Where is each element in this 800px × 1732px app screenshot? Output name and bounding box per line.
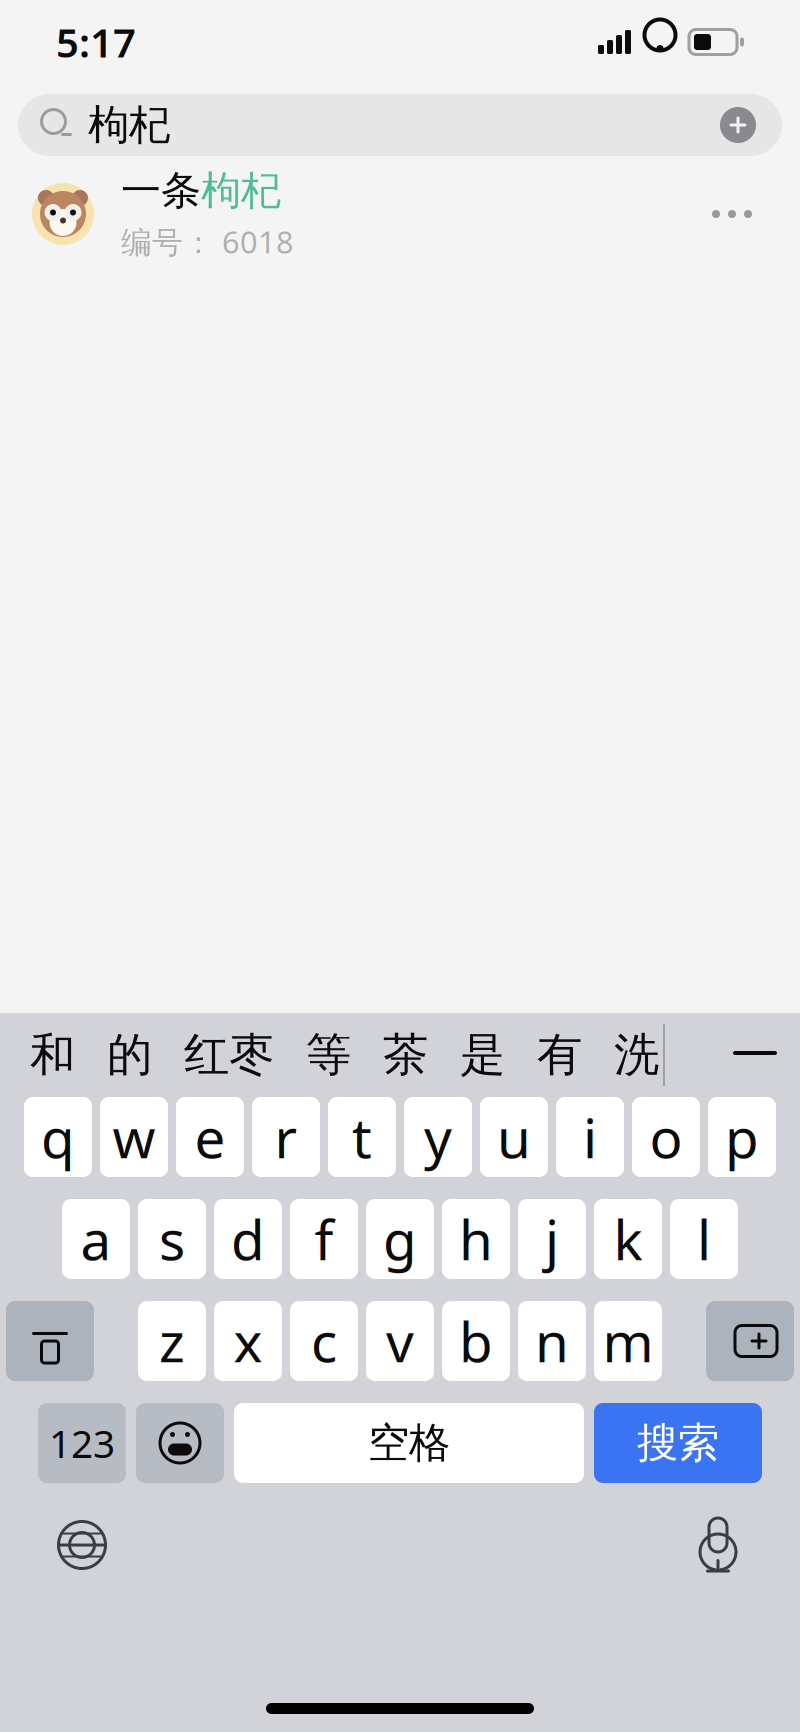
- button[interactable]: 的: [91, 1015, 168, 1095]
- button[interactable]: 空格: [234, 1403, 584, 1483]
- button[interactable]: z: [138, 1301, 206, 1381]
- staticText: 一条: [121, 166, 201, 215]
- button[interactable]: 等: [290, 1015, 367, 1095]
- button[interactable]: 一条: [0, 166, 800, 262]
- staticText: s: [159, 1203, 185, 1275]
- staticText: 编号： 6018: [121, 221, 294, 262]
- staticText: t: [352, 1101, 372, 1173]
- staticText: d: [231, 1203, 265, 1275]
- button[interactable]: 茶: [367, 1015, 444, 1095]
- button[interactable]: p: [708, 1097, 776, 1177]
- staticText: 红枣: [184, 1027, 274, 1083]
- staticText: 5:17: [56, 15, 136, 68]
- button[interactable]: e: [176, 1097, 244, 1177]
- staticText: u: [497, 1101, 531, 1173]
- staticText: 洗: [614, 1027, 659, 1083]
- button[interactable]: a: [62, 1199, 130, 1279]
- staticText: 枸杞: [201, 166, 281, 215]
- button[interactable]: 切换键盘: [34, 1505, 130, 1585]
- button[interactable]: 洗: [598, 1015, 663, 1095]
- staticText: a: [80, 1203, 111, 1275]
- staticText: r: [274, 1101, 297, 1173]
- staticText: c: [311, 1305, 337, 1377]
- button[interactable]: 是: [444, 1015, 521, 1095]
- staticText: h: [459, 1203, 493, 1275]
- staticText: 是: [460, 1027, 505, 1083]
- button[interactable]: r: [252, 1097, 320, 1177]
- staticText: 和: [30, 1027, 75, 1083]
- button[interactable]: y: [404, 1097, 472, 1177]
- staticText: k: [613, 1203, 642, 1275]
- staticText: 茶: [383, 1027, 428, 1083]
- button[interactable]: 删除: [706, 1301, 794, 1381]
- staticText: q: [41, 1101, 75, 1173]
- staticText: p: [725, 1101, 759, 1173]
- button[interactable]: j: [518, 1199, 586, 1279]
- button[interactable]: b: [442, 1301, 510, 1381]
- button[interactable]: 和: [14, 1015, 91, 1095]
- button[interactable]: k: [594, 1199, 662, 1279]
- button[interactable]: n: [518, 1301, 586, 1381]
- button[interactable]: 清除: [708, 94, 768, 156]
- staticText: n: [535, 1305, 569, 1377]
- button[interactable]: 更多: [690, 174, 774, 254]
- button[interactable]: c: [290, 1301, 358, 1381]
- button[interactable]: 语音输入: [670, 1505, 766, 1585]
- button[interactable]: s: [138, 1199, 206, 1279]
- staticText: e: [194, 1101, 225, 1173]
- button[interactable]: 表情: [136, 1403, 224, 1483]
- staticText: z: [159, 1305, 185, 1377]
- button[interactable]: m: [594, 1301, 662, 1381]
- button[interactable]: f: [290, 1199, 358, 1279]
- staticText: 空格: [368, 1418, 450, 1468]
- button[interactable]: x: [214, 1301, 282, 1381]
- button[interactable]: o: [632, 1097, 700, 1177]
- staticText: x: [233, 1305, 262, 1377]
- staticText: b: [459, 1305, 493, 1377]
- staticText: y: [424, 1101, 452, 1173]
- staticText: j: [545, 1203, 559, 1275]
- button[interactable]: u: [480, 1097, 548, 1177]
- staticText: 123: [49, 1417, 115, 1469]
- staticText: o: [649, 1101, 682, 1173]
- button[interactable]: w: [100, 1097, 168, 1177]
- staticText: 等: [306, 1027, 351, 1083]
- staticText: m: [602, 1305, 653, 1377]
- staticText: 枸杞: [88, 100, 170, 150]
- button[interactable]: 收起候选: [718, 1015, 792, 1095]
- staticText: 搜索: [637, 1418, 719, 1468]
- button[interactable]: Shift: [6, 1301, 94, 1381]
- button[interactable]: 搜索: [594, 1403, 762, 1483]
- staticText: i: [583, 1101, 597, 1173]
- button[interactable]: 红枣: [168, 1015, 290, 1095]
- staticText: g: [383, 1203, 417, 1275]
- button[interactable]: h: [442, 1199, 510, 1279]
- staticText: w: [112, 1101, 155, 1173]
- button[interactable]: i: [556, 1097, 624, 1177]
- button[interactable]: d: [214, 1199, 282, 1279]
- staticText: f: [314, 1203, 333, 1275]
- button[interactable]: 有: [521, 1015, 598, 1095]
- button[interactable]: g: [366, 1199, 434, 1279]
- staticText: v: [386, 1305, 414, 1377]
- button[interactable]: 123: [38, 1403, 126, 1483]
- button[interactable]: q: [24, 1097, 92, 1177]
- button[interactable]: t: [328, 1097, 396, 1177]
- staticText: 有: [537, 1027, 582, 1083]
- staticText: l: [697, 1203, 711, 1275]
- button[interactable]: v: [366, 1301, 434, 1381]
- button[interactable]: l: [670, 1199, 738, 1279]
- staticText: 的: [107, 1027, 152, 1083]
